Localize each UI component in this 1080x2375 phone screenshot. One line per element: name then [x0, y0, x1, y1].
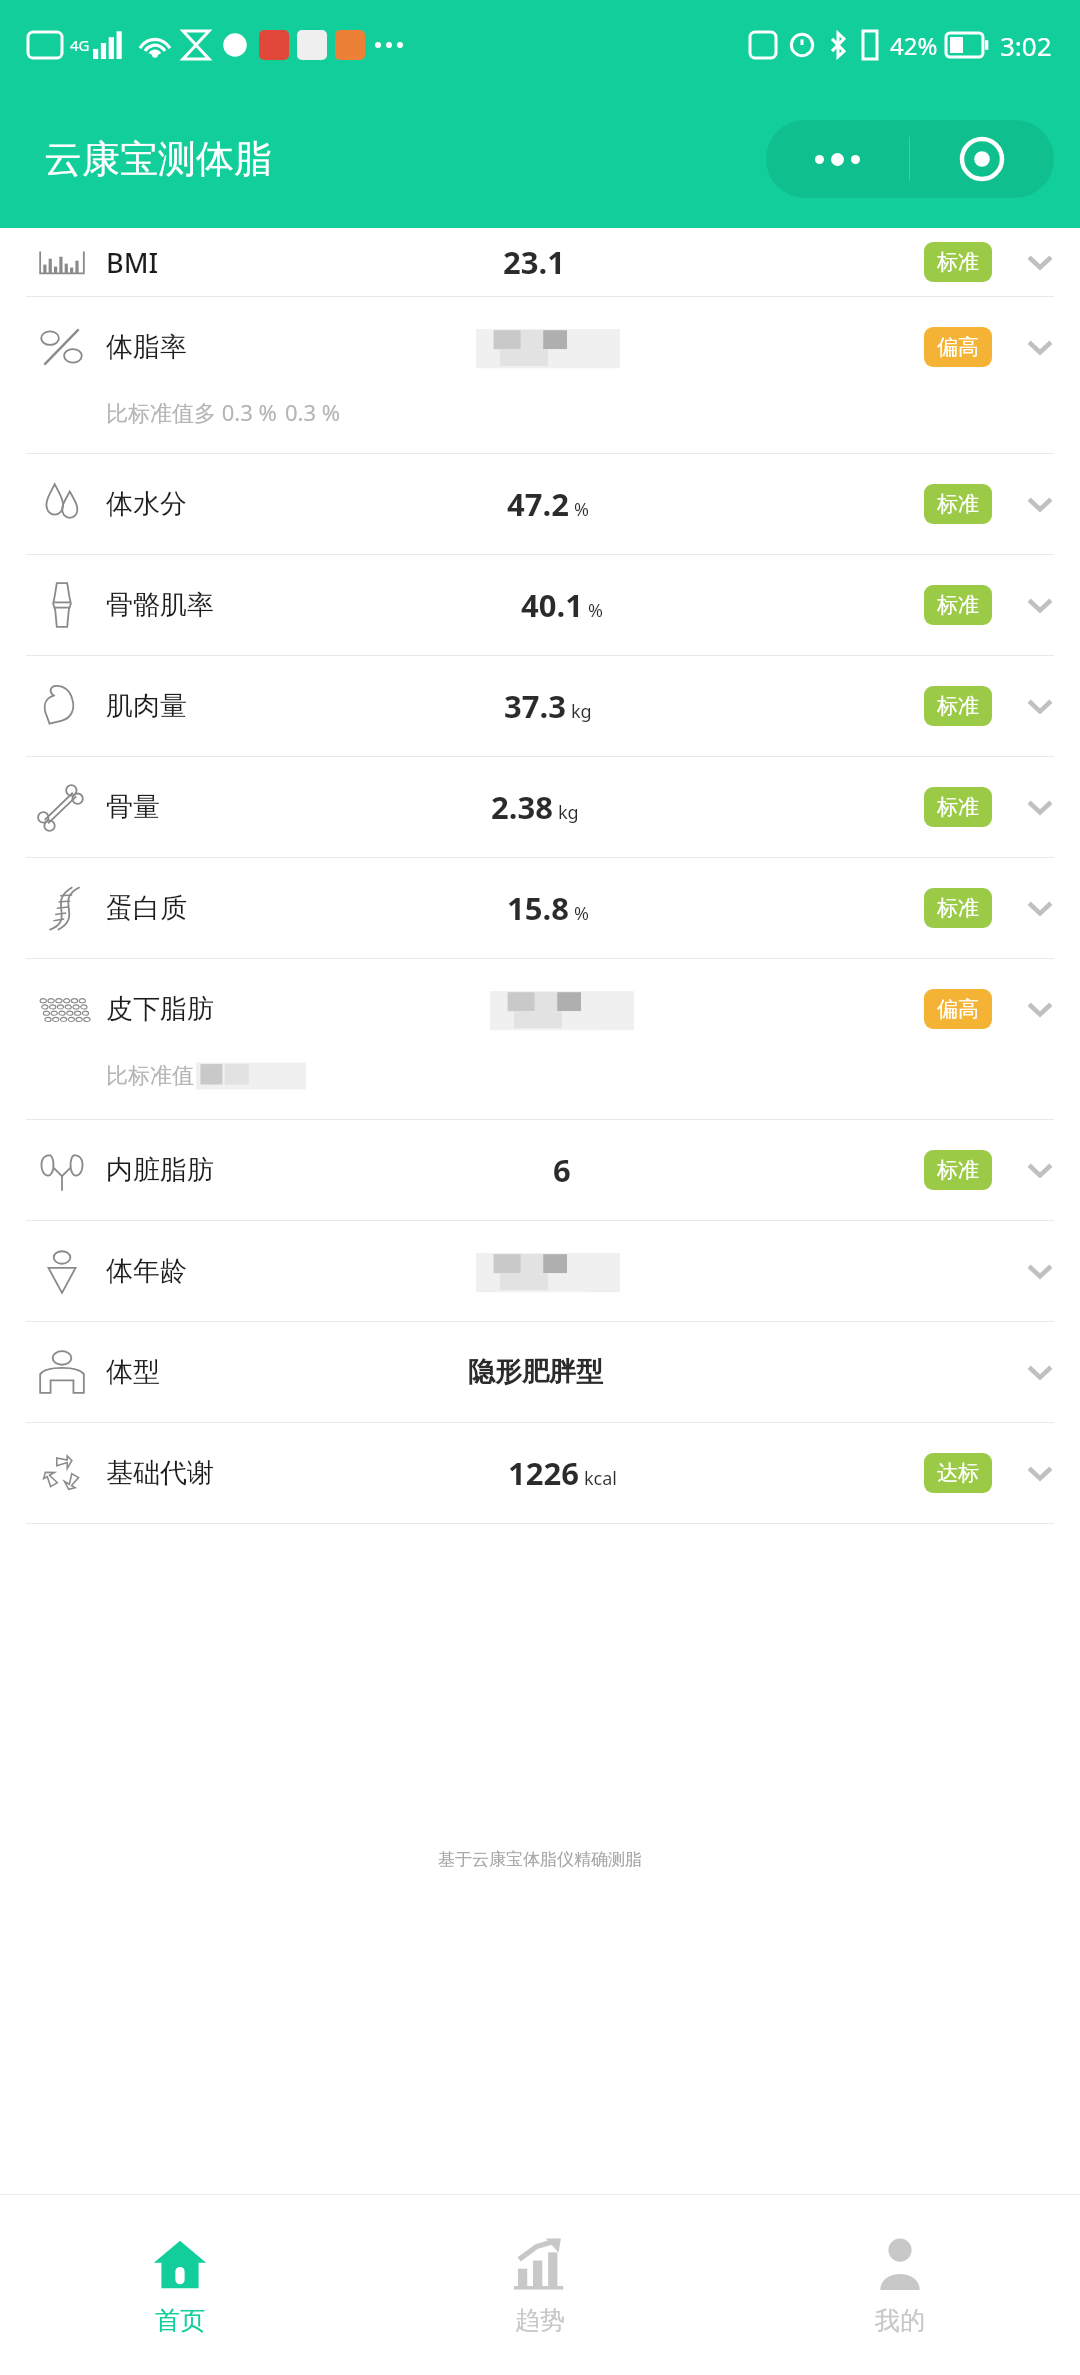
staticText: 标准 [937, 693, 979, 719]
button[interactable]: 骨量 [0, 757, 1080, 857]
staticText: 37.3 [504, 685, 566, 727]
staticText: 体水分 [106, 487, 187, 521]
button[interactable]: 体脂率 [0, 297, 1080, 453]
staticText: 15.8 [507, 887, 569, 929]
other: Expand 体型 [1020, 1352, 1060, 1392]
staticText: 0.3 % [285, 397, 341, 427]
other: Expand 体年龄 [1020, 1251, 1060, 1291]
staticText: 1226 [508, 1452, 579, 1494]
button[interactable]: 肌肉量 [0, 656, 1080, 756]
staticText: 首页 [155, 2305, 205, 2336]
button[interactable]: 体型 [0, 1322, 1080, 1422]
staticText: 基于云康宝体脂仪精确测脂 [438, 1849, 642, 1870]
button[interactable]: 趋势 [360, 2195, 720, 2375]
staticText: 趋势 [515, 2305, 565, 2336]
button[interactable]: More options [766, 120, 909, 198]
staticText: 基础代谢 [106, 1456, 214, 1490]
staticText: % [574, 901, 589, 926]
button[interactable]: Close [910, 120, 1054, 198]
staticText: 我的 [875, 2305, 925, 2336]
staticText: 23.1 [503, 241, 565, 283]
staticText: 42% [890, 29, 938, 62]
staticText: 隐形肥胖型 [468, 1355, 603, 1389]
staticText: 体脂率 [106, 330, 187, 364]
staticText: 标准 [937, 895, 979, 921]
button[interactable]: 我的 [720, 2195, 1080, 2375]
staticText: 内脏脂肪 [106, 1153, 214, 1187]
other: Expand 蛋白质 [1020, 888, 1060, 928]
staticText: 蛋白质 [106, 891, 187, 925]
staticText: 比标准值 [106, 1062, 194, 1090]
staticText: 2.38 [491, 786, 553, 828]
staticText: 6 [553, 1149, 571, 1191]
staticText: 47.2 [507, 483, 569, 525]
staticText: BMI [106, 244, 159, 281]
other: Expand 骨骼肌率 [1020, 585, 1060, 625]
staticText: 40.1 [521, 584, 583, 626]
button[interactable]: 蛋白质 [0, 858, 1080, 958]
staticText: 偏高 [937, 996, 979, 1022]
other: Expand 内脏脂肪 [1020, 1150, 1060, 1190]
staticText: 偏高 [937, 334, 979, 360]
button[interactable]: 内脏脂肪 [0, 1120, 1080, 1220]
staticText: 4G [70, 35, 90, 55]
other: Expand 皮下脂肪 [1020, 989, 1060, 1029]
staticText: 骨骼肌率 [106, 588, 214, 622]
button[interactable]: 体年龄 [0, 1221, 1080, 1321]
other: Expand 骨量 [1020, 787, 1060, 827]
button[interactable]: 骨骼肌率 [0, 555, 1080, 655]
staticText: 标准 [937, 794, 979, 820]
button[interactable]: 基础代谢 [0, 1423, 1080, 1523]
staticText: % [574, 497, 589, 522]
button[interactable]: 皮下脂肪 [0, 959, 1080, 1119]
other: Expand 体脂率 [1020, 327, 1060, 367]
staticText: kg [558, 800, 579, 825]
staticText: 标准 [937, 1157, 979, 1183]
staticText: 标准 [937, 592, 979, 618]
staticText: 云康宝测体脂 [44, 135, 272, 183]
button[interactable]: 首页 [0, 2195, 360, 2375]
other: Expand 体水分 [1020, 484, 1060, 524]
button[interactable]: BMI [0, 228, 1080, 296]
staticText: 肌肉量 [106, 689, 187, 723]
staticText: % [588, 598, 603, 623]
staticText: 体型 [106, 1355, 160, 1389]
staticText: 骨量 [106, 790, 160, 824]
staticText: 3:02 [1000, 28, 1052, 63]
staticText: 比标准值多 0.3 % [106, 397, 277, 427]
other: Expand 基础代谢 [1020, 1453, 1060, 1493]
button[interactable]: 体水分 [0, 454, 1080, 554]
staticText: 达标 [937, 1460, 979, 1486]
staticText: 皮下脂肪 [106, 992, 214, 1026]
staticText: kg [571, 699, 592, 724]
staticText: 标准 [937, 249, 979, 275]
staticText: kcal [584, 1466, 617, 1491]
other: Expand BMI [1020, 242, 1060, 282]
staticText: 标准 [937, 491, 979, 517]
other: Expand 肌肉量 [1020, 686, 1060, 726]
staticText: 体年龄 [106, 1254, 187, 1288]
